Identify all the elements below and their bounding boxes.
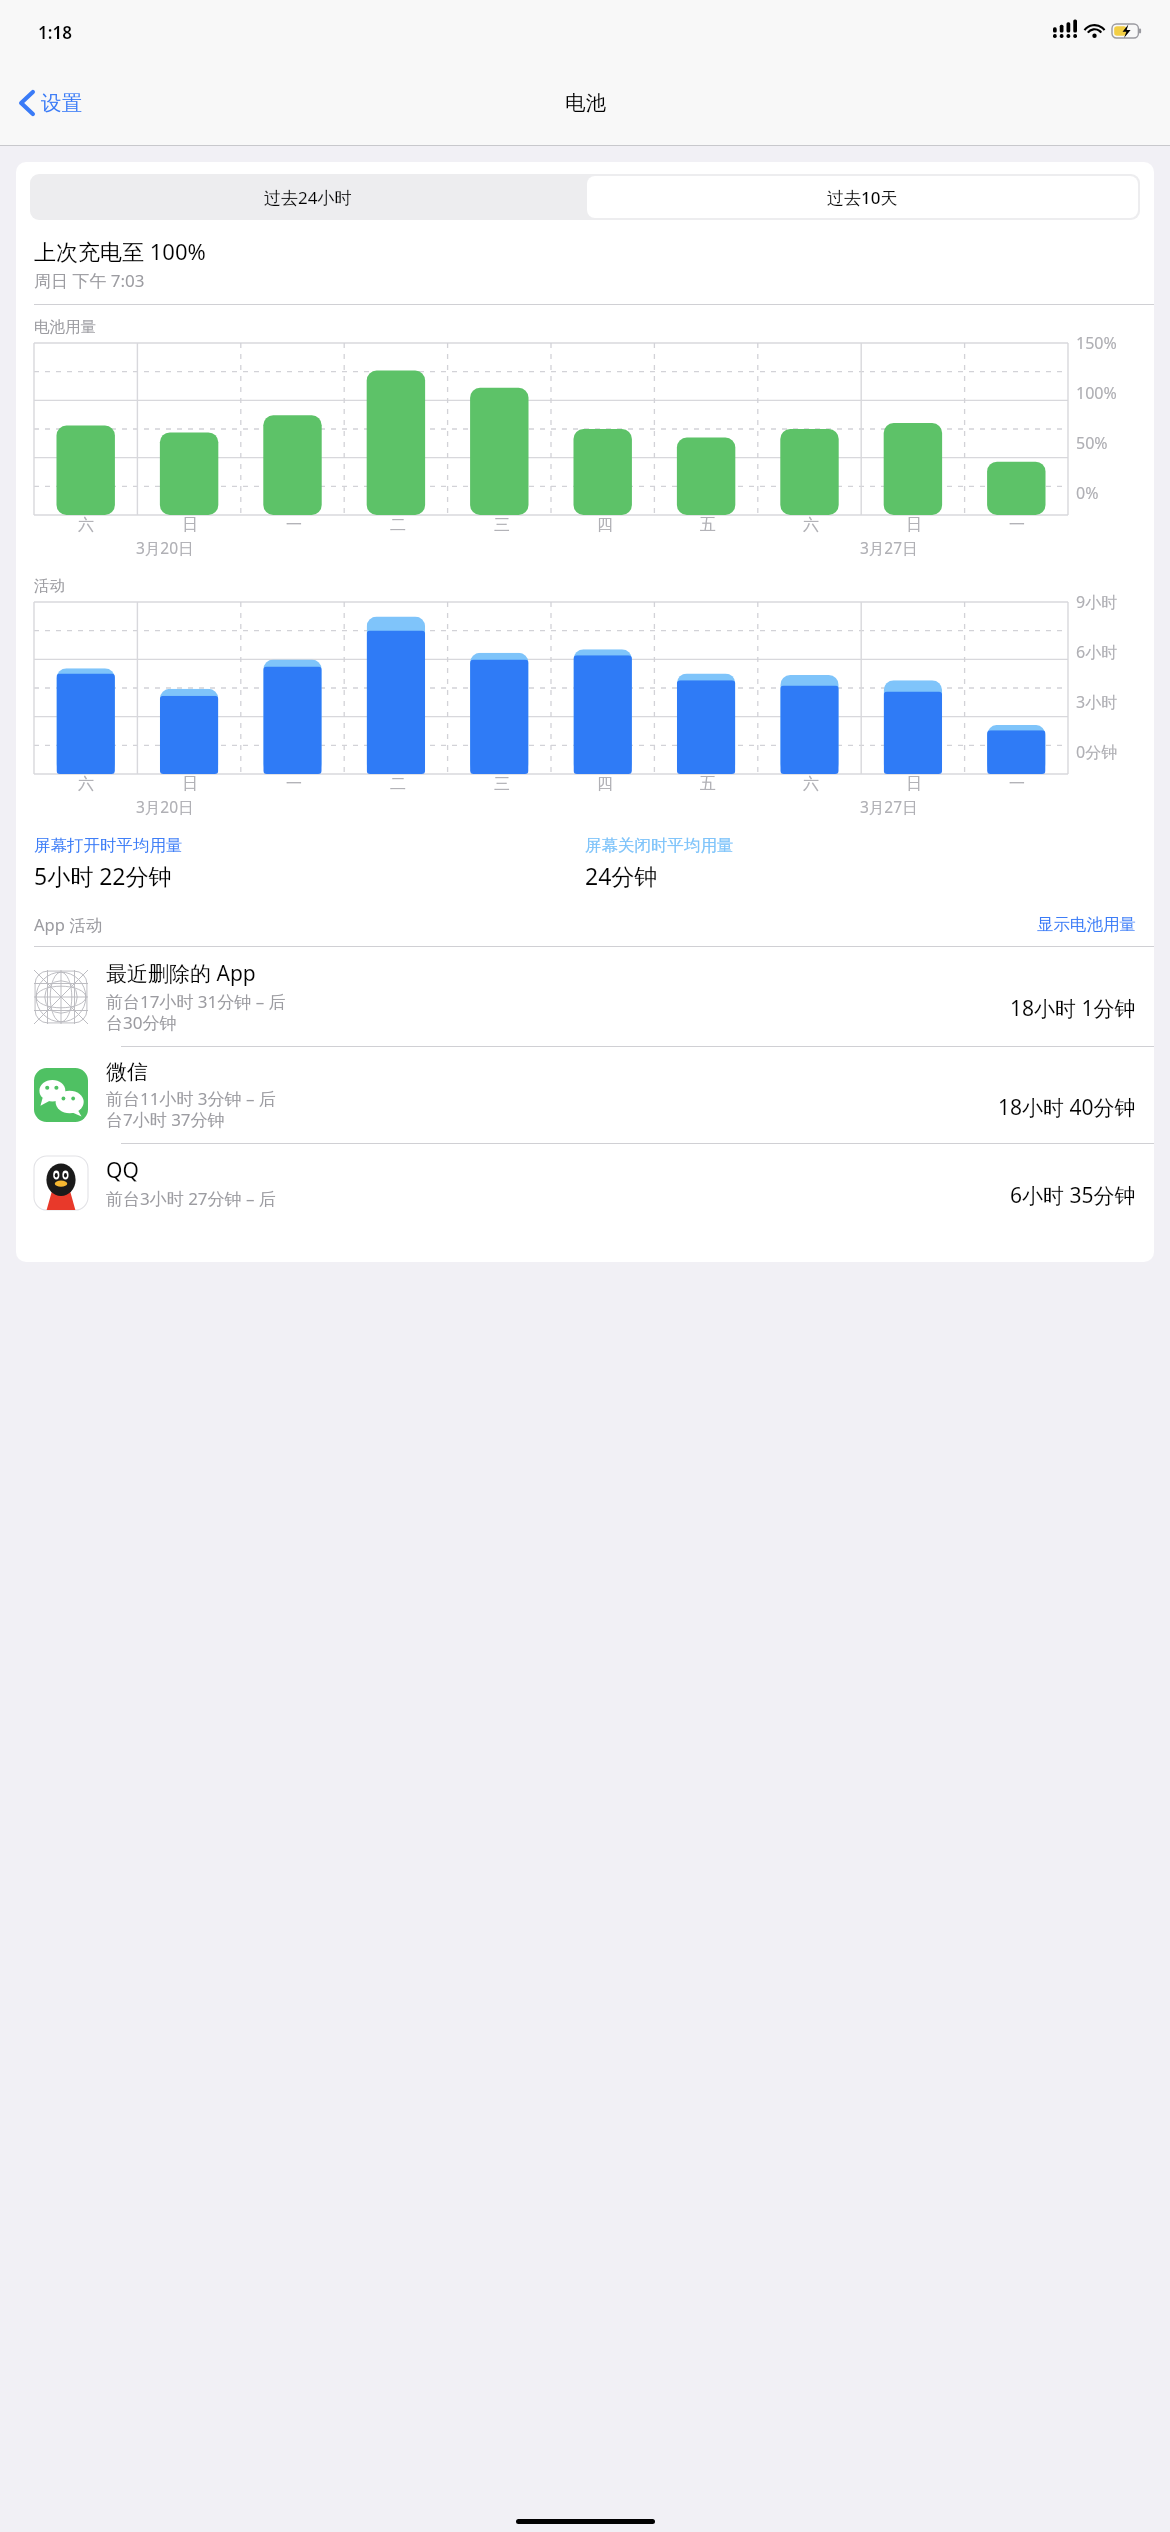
staticText: 六 [803,515,819,535]
staticText: 显示电池用量 [1037,914,1136,935]
staticText: 前台17小时 31分钟 – 后 台30分钟 [106,990,286,1034]
button[interactable]: 过去24小时 [30,174,585,220]
staticText: App 活动 [34,913,103,936]
staticText: 六 [78,515,94,535]
staticText: 最近删除的 App [106,959,256,988]
button[interactable]: 微信 [16,1047,1154,1143]
staticText: 24分钟 [585,860,658,891]
button[interactable]: 过去10天 [587,176,1138,218]
staticText: 六 [803,774,819,794]
staticText: 过去10天 [827,186,898,209]
staticText: 一 [1009,515,1025,535]
staticText: 二 [390,515,406,535]
staticText: 前台3小时 27分钟 – 后 [106,1187,276,1210]
staticText: 6小时 35分钟 [1010,1181,1136,1210]
staticText: 100% [1076,382,1117,404]
staticText: 5小时 22分钟 [34,860,172,891]
staticText: 五 [700,774,716,794]
staticText: 周日 下午 7:03 [34,269,145,292]
staticText: 电池用量 [34,317,96,337]
staticText: 屏幕打开时平均用量 [34,835,183,856]
staticText: 日 [906,515,922,535]
button[interactable]: QQ [16,1144,1154,1222]
staticText: 18小时 1分钟 [1010,994,1136,1023]
staticText: 屏幕关闭时平均用量 [585,835,734,856]
staticText: 3月20日 [136,537,194,558]
staticText: 150% [1076,332,1117,354]
staticText: 三 [494,515,510,535]
staticText: 3小时 [1076,691,1118,713]
staticText: 设置 [41,90,82,116]
staticText: 日 [182,515,198,535]
staticText: 过去24小时 [264,186,352,209]
staticText: 9小时 [1076,591,1118,613]
button[interactable]: 设置 [12,82,90,124]
staticText: 18小时 40分钟 [998,1093,1136,1122]
staticText: 三 [494,774,510,794]
staticText: 四 [597,774,613,794]
staticText: 一 [286,515,302,535]
staticText: 一 [1009,774,1025,794]
staticText: 电池 [565,90,606,116]
staticText: 3月27日 [860,796,918,817]
staticText: 日 [906,774,922,794]
staticText: 前台11小时 3分钟 – 后 台7小时 37分钟 [106,1087,276,1131]
staticText: 日 [182,774,198,794]
staticText: 上次充电至 100% [34,236,206,266]
staticText: 3月27日 [860,537,918,558]
staticText: 0分钟 [1076,741,1118,763]
staticText: 六 [78,774,94,794]
staticText: 50% [1076,432,1108,454]
staticText: 6小时 [1076,641,1118,663]
button[interactable]: 显示电池用量 [1037,914,1136,935]
staticText: 一 [286,774,302,794]
staticText: 五 [700,515,716,535]
staticText: 0% [1076,482,1099,504]
staticText: QQ [106,1156,139,1185]
staticText: 微信 [106,1059,148,1085]
staticText: 二 [390,774,406,794]
staticText: 四 [597,515,613,535]
staticText: 活动 [34,576,65,596]
button[interactable]: 最近删除的 App [16,947,1154,1046]
staticText: 1:18 [38,21,72,44]
staticText: 3月20日 [136,796,194,817]
